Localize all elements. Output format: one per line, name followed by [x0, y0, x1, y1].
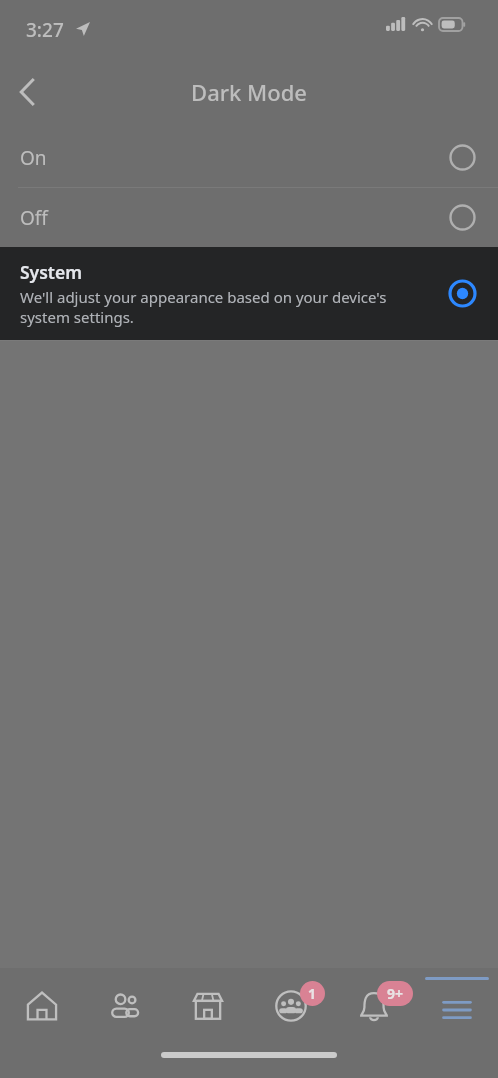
button[interactable]: Marketplace	[166, 968, 249, 1044]
staticText: 1	[308, 984, 317, 1003]
button[interactable]: Notifications	[332, 968, 415, 1044]
button[interactable]: Friends	[83, 968, 166, 1044]
button[interactable]: On	[0, 128, 498, 187]
staticText: Off	[20, 205, 48, 231]
button[interactable]: Menu	[415, 968, 498, 1044]
staticText: System	[20, 260, 82, 284]
staticText: 3:27	[26, 17, 64, 43]
staticText: 9+	[387, 984, 404, 1003]
button[interactable]: System	[0, 247, 498, 340]
button[interactable]: Home	[0, 968, 83, 1044]
button[interactable]: Back	[1, 66, 53, 118]
staticText: We'll adjust your appearance based on yo…	[20, 287, 407, 327]
button[interactable]: Groups	[249, 968, 332, 1044]
button[interactable]: Off	[0, 188, 498, 247]
staticText: Dark Mode	[191, 77, 307, 107]
staticText: On	[20, 145, 47, 171]
